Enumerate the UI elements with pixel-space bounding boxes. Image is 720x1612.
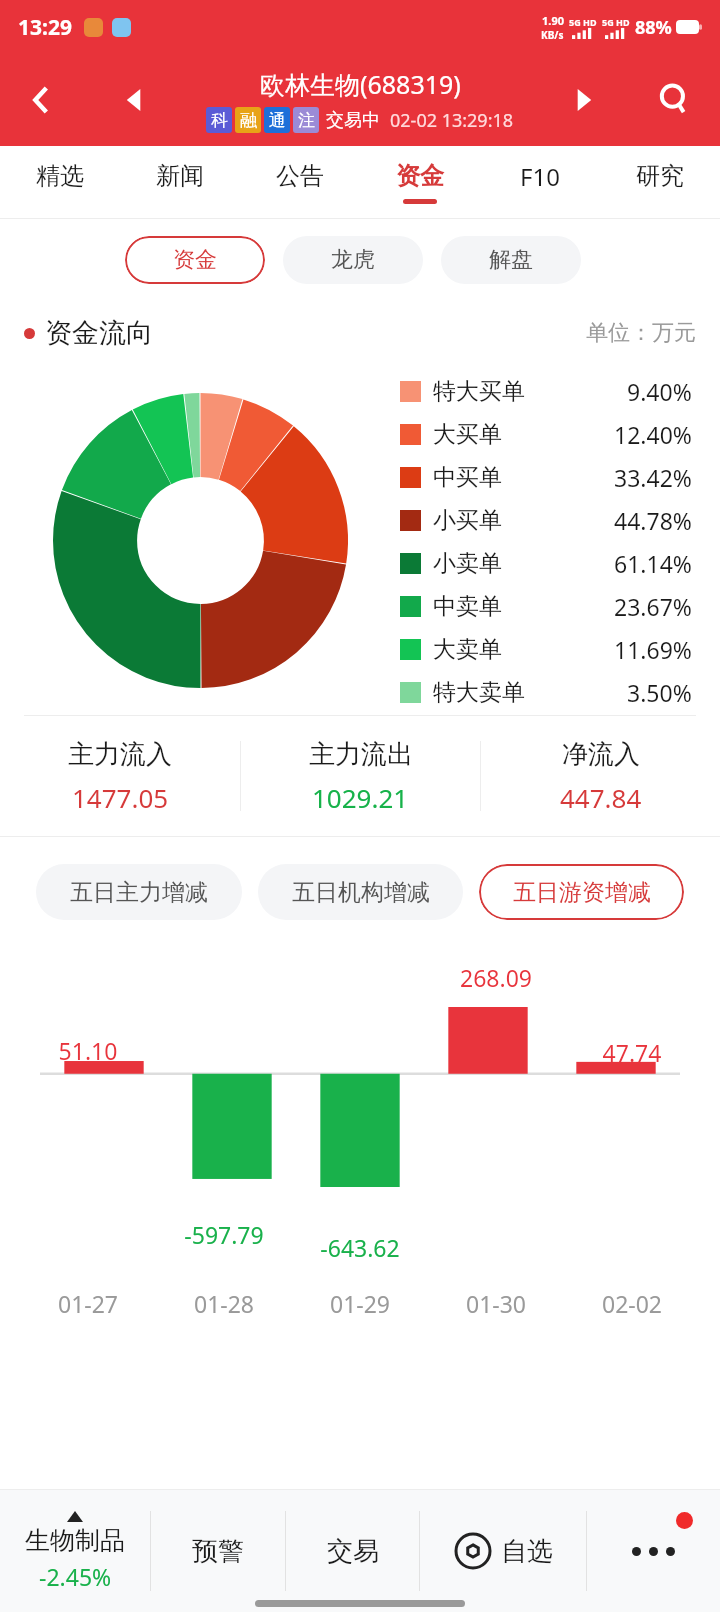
staticText: 447.84 xyxy=(560,780,642,815)
button[interactable]: Next stock xyxy=(560,76,608,124)
staticText: -597.79 xyxy=(156,1219,292,1250)
staticText: 大买单 xyxy=(433,420,502,449)
button[interactable]: 五日主力增减 xyxy=(36,864,242,920)
staticText: 44.78% xyxy=(614,505,692,536)
staticText: -2.45% xyxy=(39,1561,112,1592)
button[interactable]: 交易 xyxy=(286,1490,419,1612)
button[interactable]: F10 xyxy=(480,146,600,219)
button[interactable]: More options xyxy=(587,1490,720,1612)
button[interactable]: 解盘 xyxy=(441,236,581,284)
staticText: 01-29 xyxy=(292,1288,428,1319)
staticText: 五日主力增减 xyxy=(70,878,208,907)
button[interactable]: 龙虎 xyxy=(283,236,423,284)
staticText: 交易中 xyxy=(326,109,380,132)
staticText: 3.50% xyxy=(627,677,692,708)
staticText: 02-02 13:29:18 xyxy=(390,108,514,133)
staticText: 解盘 xyxy=(489,246,533,274)
staticText: 龙虎 xyxy=(331,246,375,274)
staticText: 五日游资增减 xyxy=(513,878,651,907)
staticText: 注 xyxy=(298,110,315,131)
staticText: 科 xyxy=(211,110,228,131)
staticText: 五日机构增减 xyxy=(292,878,430,907)
staticText: 大卖单 xyxy=(433,635,502,664)
staticText: 中卖单 xyxy=(433,592,502,621)
button[interactable]: 主力流入 xyxy=(0,738,240,815)
staticText: 01-27 xyxy=(20,1288,156,1319)
staticText: 268.09 xyxy=(428,962,564,993)
staticText: 51.10 xyxy=(20,1035,156,1066)
staticText: 单位：万元 xyxy=(586,319,696,347)
staticText: 自选 xyxy=(501,1535,553,1568)
staticText: 公告 xyxy=(276,161,324,191)
staticText: 特大买单 xyxy=(433,377,525,406)
staticText: 1.90 xyxy=(542,13,564,28)
button[interactable]: 五日游资增减 xyxy=(479,864,684,920)
staticText: 小买单 xyxy=(433,506,502,535)
staticText: 小卖单 xyxy=(433,549,502,578)
staticText: 88% xyxy=(635,15,672,40)
staticText: 23.67% xyxy=(614,591,692,622)
staticText: 01-30 xyxy=(428,1288,564,1319)
staticText: 12.40% xyxy=(614,419,692,450)
staticText: 资金 xyxy=(173,246,217,274)
staticText: 02-02 xyxy=(564,1288,700,1319)
staticText: 中买单 xyxy=(433,463,502,492)
staticText: 5G HD xyxy=(602,16,630,28)
staticText: 资金流向 xyxy=(45,316,153,350)
staticText: 预警 xyxy=(192,1535,244,1568)
staticText: 主力流入 xyxy=(68,738,172,771)
button[interactable]: 资金 xyxy=(360,146,480,219)
staticText: 11.69% xyxy=(614,634,692,665)
button[interactable]: 精选 xyxy=(0,146,120,219)
button[interactable]: 资金 xyxy=(125,236,265,284)
staticText: 主力流出 xyxy=(309,738,413,771)
staticText: 精选 xyxy=(36,161,84,191)
staticText: 1029.21 xyxy=(312,780,409,815)
button[interactable]: 净流入 xyxy=(481,738,720,815)
staticText: 5G HD xyxy=(569,16,597,28)
button[interactable]: Search xyxy=(646,72,702,128)
staticText: 特大卖单 xyxy=(433,678,525,707)
staticText: 1477.05 xyxy=(72,780,169,815)
button[interactable]: 公告 xyxy=(240,146,360,219)
staticText: 资金 xyxy=(396,161,444,191)
button[interactable]: 新闻 xyxy=(120,146,240,219)
staticText: 新闻 xyxy=(156,161,204,191)
staticText: 净流入 xyxy=(562,738,640,771)
staticText: 61.14% xyxy=(614,548,692,579)
staticText: 13:29 xyxy=(18,13,72,42)
staticText: F10 xyxy=(520,160,560,193)
button[interactable]: 自选 xyxy=(420,1490,586,1612)
staticText: 生物制品 xyxy=(25,1525,125,1556)
staticText: 欧林生物(688319) xyxy=(260,67,461,101)
button[interactable]: 五日机构增减 xyxy=(258,864,463,920)
staticText: KB/s xyxy=(541,28,564,42)
staticText: 融 xyxy=(240,110,257,131)
staticText: 01-28 xyxy=(156,1288,292,1319)
button[interactable]: 主力流出 xyxy=(241,738,480,815)
button[interactable]: 研究 xyxy=(600,146,720,219)
staticText: 33.42% xyxy=(614,462,692,493)
staticText: 交易 xyxy=(327,1535,379,1568)
button[interactable]: 生物制品 xyxy=(0,1511,150,1592)
staticText: 通 xyxy=(269,110,286,131)
button[interactable]: 预警 xyxy=(151,1490,285,1612)
staticText: 9.40% xyxy=(627,376,692,407)
button[interactable]: Back xyxy=(14,72,70,128)
staticText: -643.62 xyxy=(292,1232,428,1263)
button[interactable]: Previous stock xyxy=(110,76,158,124)
staticText: 研究 xyxy=(636,161,684,191)
staticText: 47.74 xyxy=(564,1037,700,1068)
